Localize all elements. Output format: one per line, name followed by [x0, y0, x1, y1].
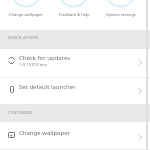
button[interactable]: Change wallpaper	[2, 0, 50, 17]
staticText: Change wallpaper	[9, 12, 43, 17]
staticText: System settings	[106, 12, 136, 17]
staticText: Change wallpaper	[19, 129, 70, 137]
button[interactable]: Set default launcher	[0, 78, 150, 104]
button[interactable]: Feedback & help	[50, 0, 97, 17]
staticText: QUICK ACCESS	[8, 35, 39, 41]
staticText: Set default launcher	[19, 83, 76, 91]
button[interactable]: System settings	[97, 0, 144, 17]
button[interactable]: Change wallpaper	[0, 122, 150, 149]
staticText: CUSTOMIZE	[8, 110, 33, 116]
staticText: 1.0.15210.dev	[19, 61, 47, 67]
button[interactable]: Check for updates	[0, 49, 150, 77]
staticText: Check for updates	[19, 54, 71, 62]
staticText: Feedback & help	[58, 12, 90, 17]
